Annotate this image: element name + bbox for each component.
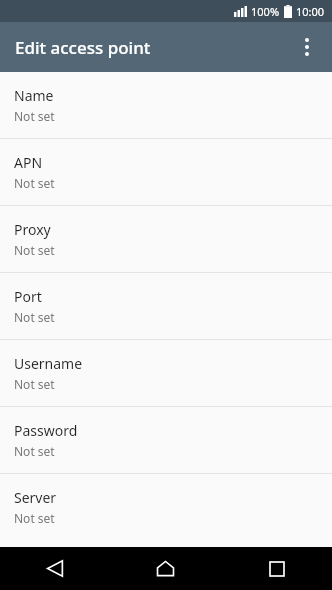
staticText: Not set <box>14 242 55 258</box>
staticText: Not set <box>14 108 55 124</box>
button[interactable]: Recent apps <box>221 547 332 590</box>
button[interactable]: Proxy <box>0 206 332 272</box>
staticText: Not set <box>14 510 55 526</box>
staticText: Password <box>14 421 78 440</box>
button[interactable]: Home <box>110 547 221 590</box>
staticText: Not set <box>14 443 55 459</box>
button[interactable]: Name <box>0 72 332 138</box>
button[interactable]: Username <box>0 340 332 406</box>
button[interactable]: Password <box>0 407 332 473</box>
button[interactable]: Back <box>0 547 110 590</box>
staticText: APN <box>14 153 43 172</box>
button[interactable]: APN <box>0 139 332 205</box>
staticText: Edit access point <box>15 36 151 59</box>
staticText: 100% <box>251 4 280 19</box>
staticText: Username <box>14 354 83 373</box>
staticText: Proxy <box>14 220 51 239</box>
staticText: Server <box>14 488 57 507</box>
button[interactable]: More options <box>288 28 326 66</box>
button[interactable]: Server <box>0 474 332 540</box>
staticText: Not set <box>14 175 55 191</box>
staticText: 10:00 <box>296 4 325 19</box>
button[interactable]: Port <box>0 273 332 339</box>
staticText: Not set <box>14 309 55 325</box>
staticText: Port <box>14 287 42 306</box>
staticText: Name <box>14 86 54 105</box>
staticText: Not set <box>14 376 55 392</box>
